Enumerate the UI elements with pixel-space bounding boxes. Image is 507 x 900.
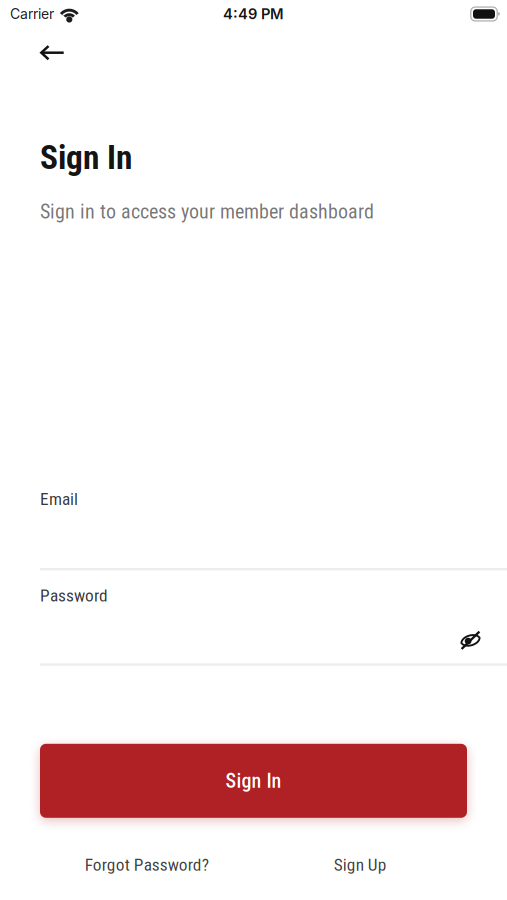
button[interactable]: Forgot Password?	[40, 845, 253, 885]
staticText: Sign in to access your member dashboard	[40, 200, 374, 223]
button[interactable]: Show password	[449, 625, 492, 655]
staticText: Password	[40, 585, 108, 606]
staticText: Sign Up	[334, 855, 387, 875]
staticText: Sign In	[40, 138, 132, 177]
button[interactable]: Back	[0, 28, 87, 76]
staticText: Sign In	[225, 769, 281, 792]
button[interactable]: Sign Up	[253, 845, 467, 885]
staticText: Email	[40, 489, 78, 509]
button[interactable]: Sign In	[40, 744, 467, 818]
staticText: 4:49 PM	[223, 5, 284, 23]
staticText: Forgot Password?	[85, 855, 209, 875]
staticText: Carrier	[10, 5, 54, 22]
